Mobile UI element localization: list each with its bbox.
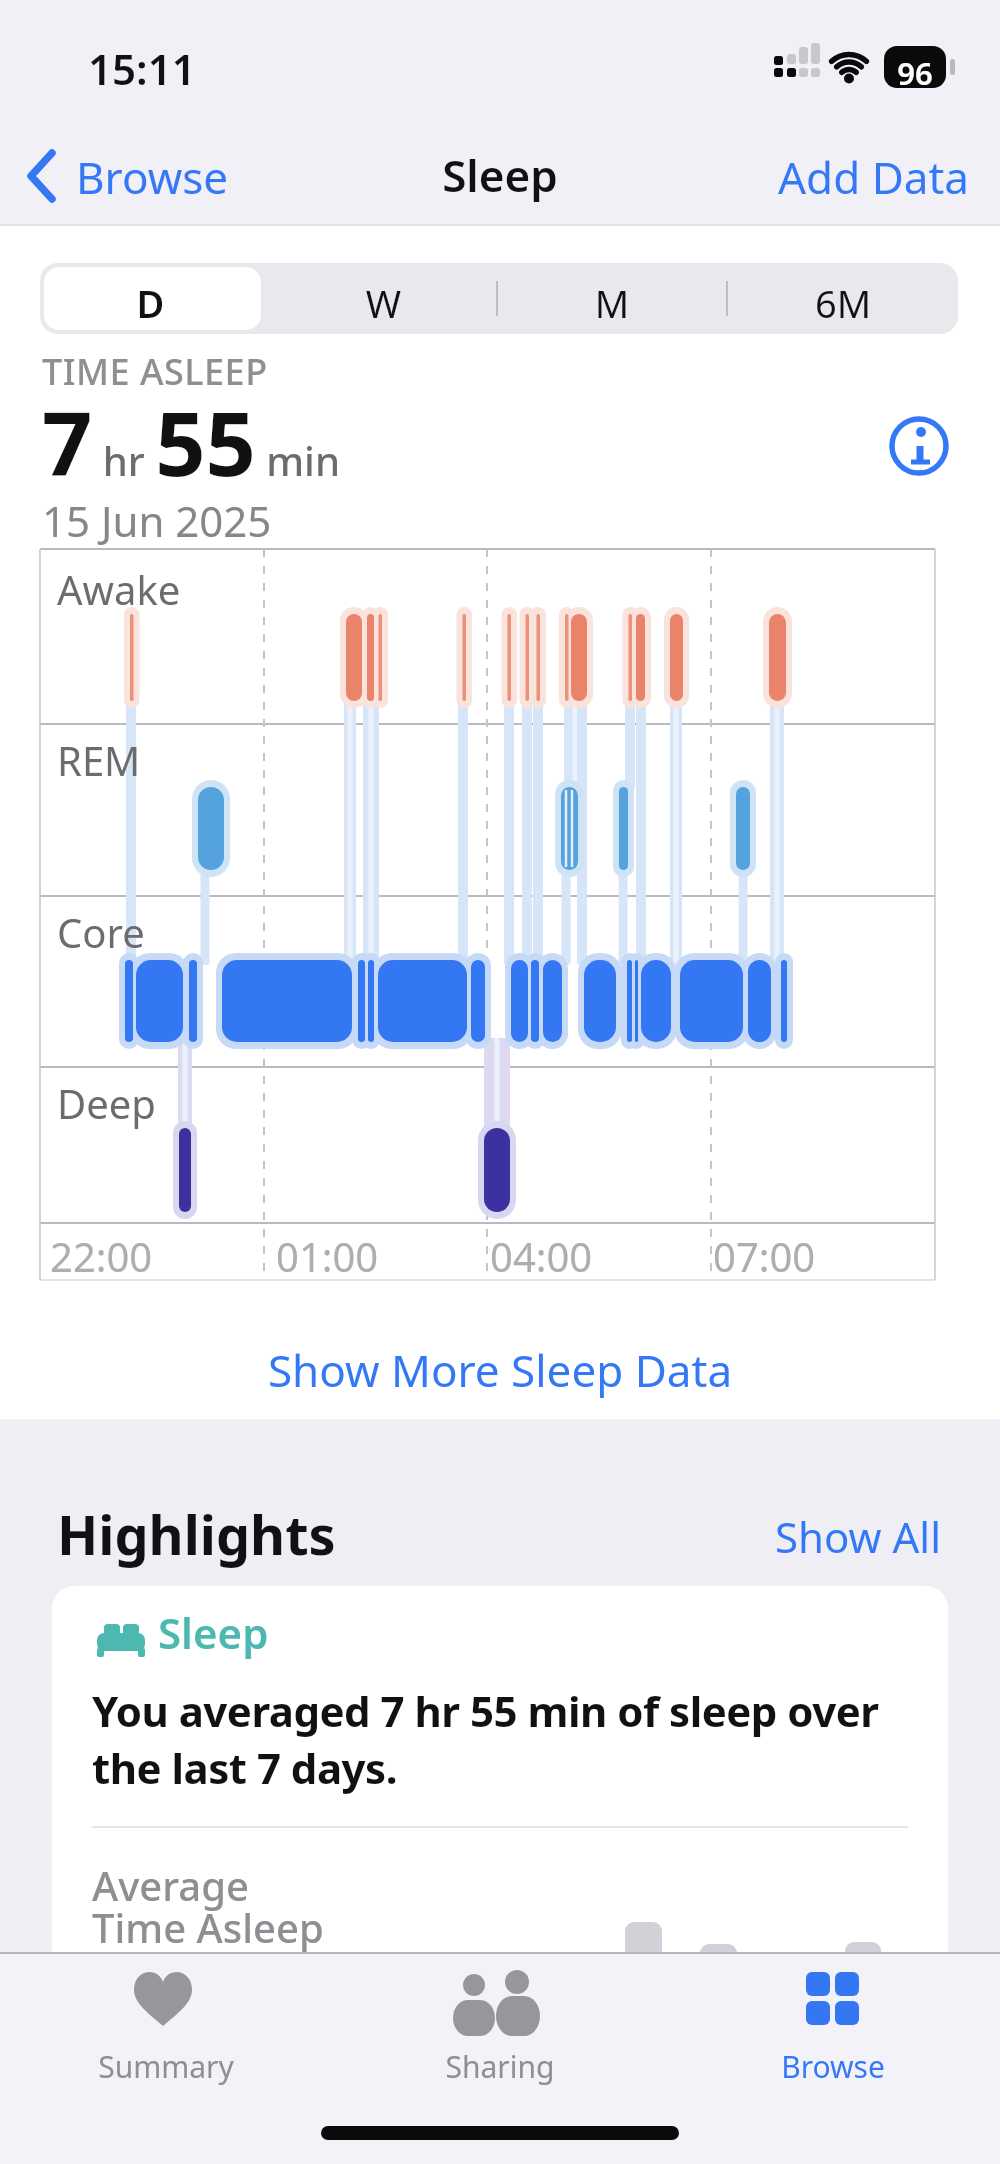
button[interactable] — [498, 265, 726, 332]
button[interactable]: Show More Sleep Data — [0, 1340, 1000, 1400]
staticText: REM — [57, 733, 141, 787]
button[interactable] — [733, 1956, 933, 2096]
button[interactable] — [888, 415, 950, 477]
staticText: 01:00 — [276, 1229, 379, 1283]
staticText: Sleep — [158, 1604, 269, 1661]
staticText: Awake — [57, 562, 181, 616]
staticText: You averaged 7 hr 55 min of sleep over t… — [92, 1682, 879, 1796]
staticText: 15 Jun 2025 — [42, 492, 272, 549]
staticText: Highlights — [57, 1497, 336, 1571]
button[interactable] — [66, 1956, 266, 2096]
button[interactable] — [728, 265, 958, 332]
button[interactable] — [400, 1956, 600, 2096]
staticText: 07:00 — [713, 1229, 816, 1283]
staticText: D — [40, 277, 261, 329]
staticText: Sharing — [400, 2046, 600, 2087]
button[interactable]: Show All — [775, 1508, 942, 1565]
staticText: 15:11 — [88, 40, 196, 97]
staticText: Deep — [57, 1076, 156, 1130]
staticText: 6M — [728, 277, 958, 329]
staticText: Browse — [76, 147, 229, 207]
staticText: M — [498, 277, 726, 329]
button[interactable] — [44, 267, 261, 330]
staticText: Summary — [66, 2046, 266, 2087]
staticText: Browse — [733, 2046, 933, 2087]
button[interactable] — [20, 140, 240, 210]
button[interactable] — [261, 265, 496, 332]
staticText: 22:00 — [50, 1229, 153, 1283]
staticText: 7 hr 55 min — [42, 382, 340, 502]
button[interactable]: Sleep — [52, 1586, 948, 2146]
staticText: W — [266, 277, 501, 329]
staticText: Average Time Asleep — [92, 1858, 324, 1955]
staticText: Sleep — [0, 145, 1000, 205]
staticText: 96 — [884, 52, 946, 94]
staticText: TIME ASLEEP — [42, 347, 268, 396]
button[interactable]: Add Data — [778, 147, 970, 207]
staticText: 04:00 — [490, 1229, 593, 1283]
staticText: Core — [57, 905, 145, 959]
